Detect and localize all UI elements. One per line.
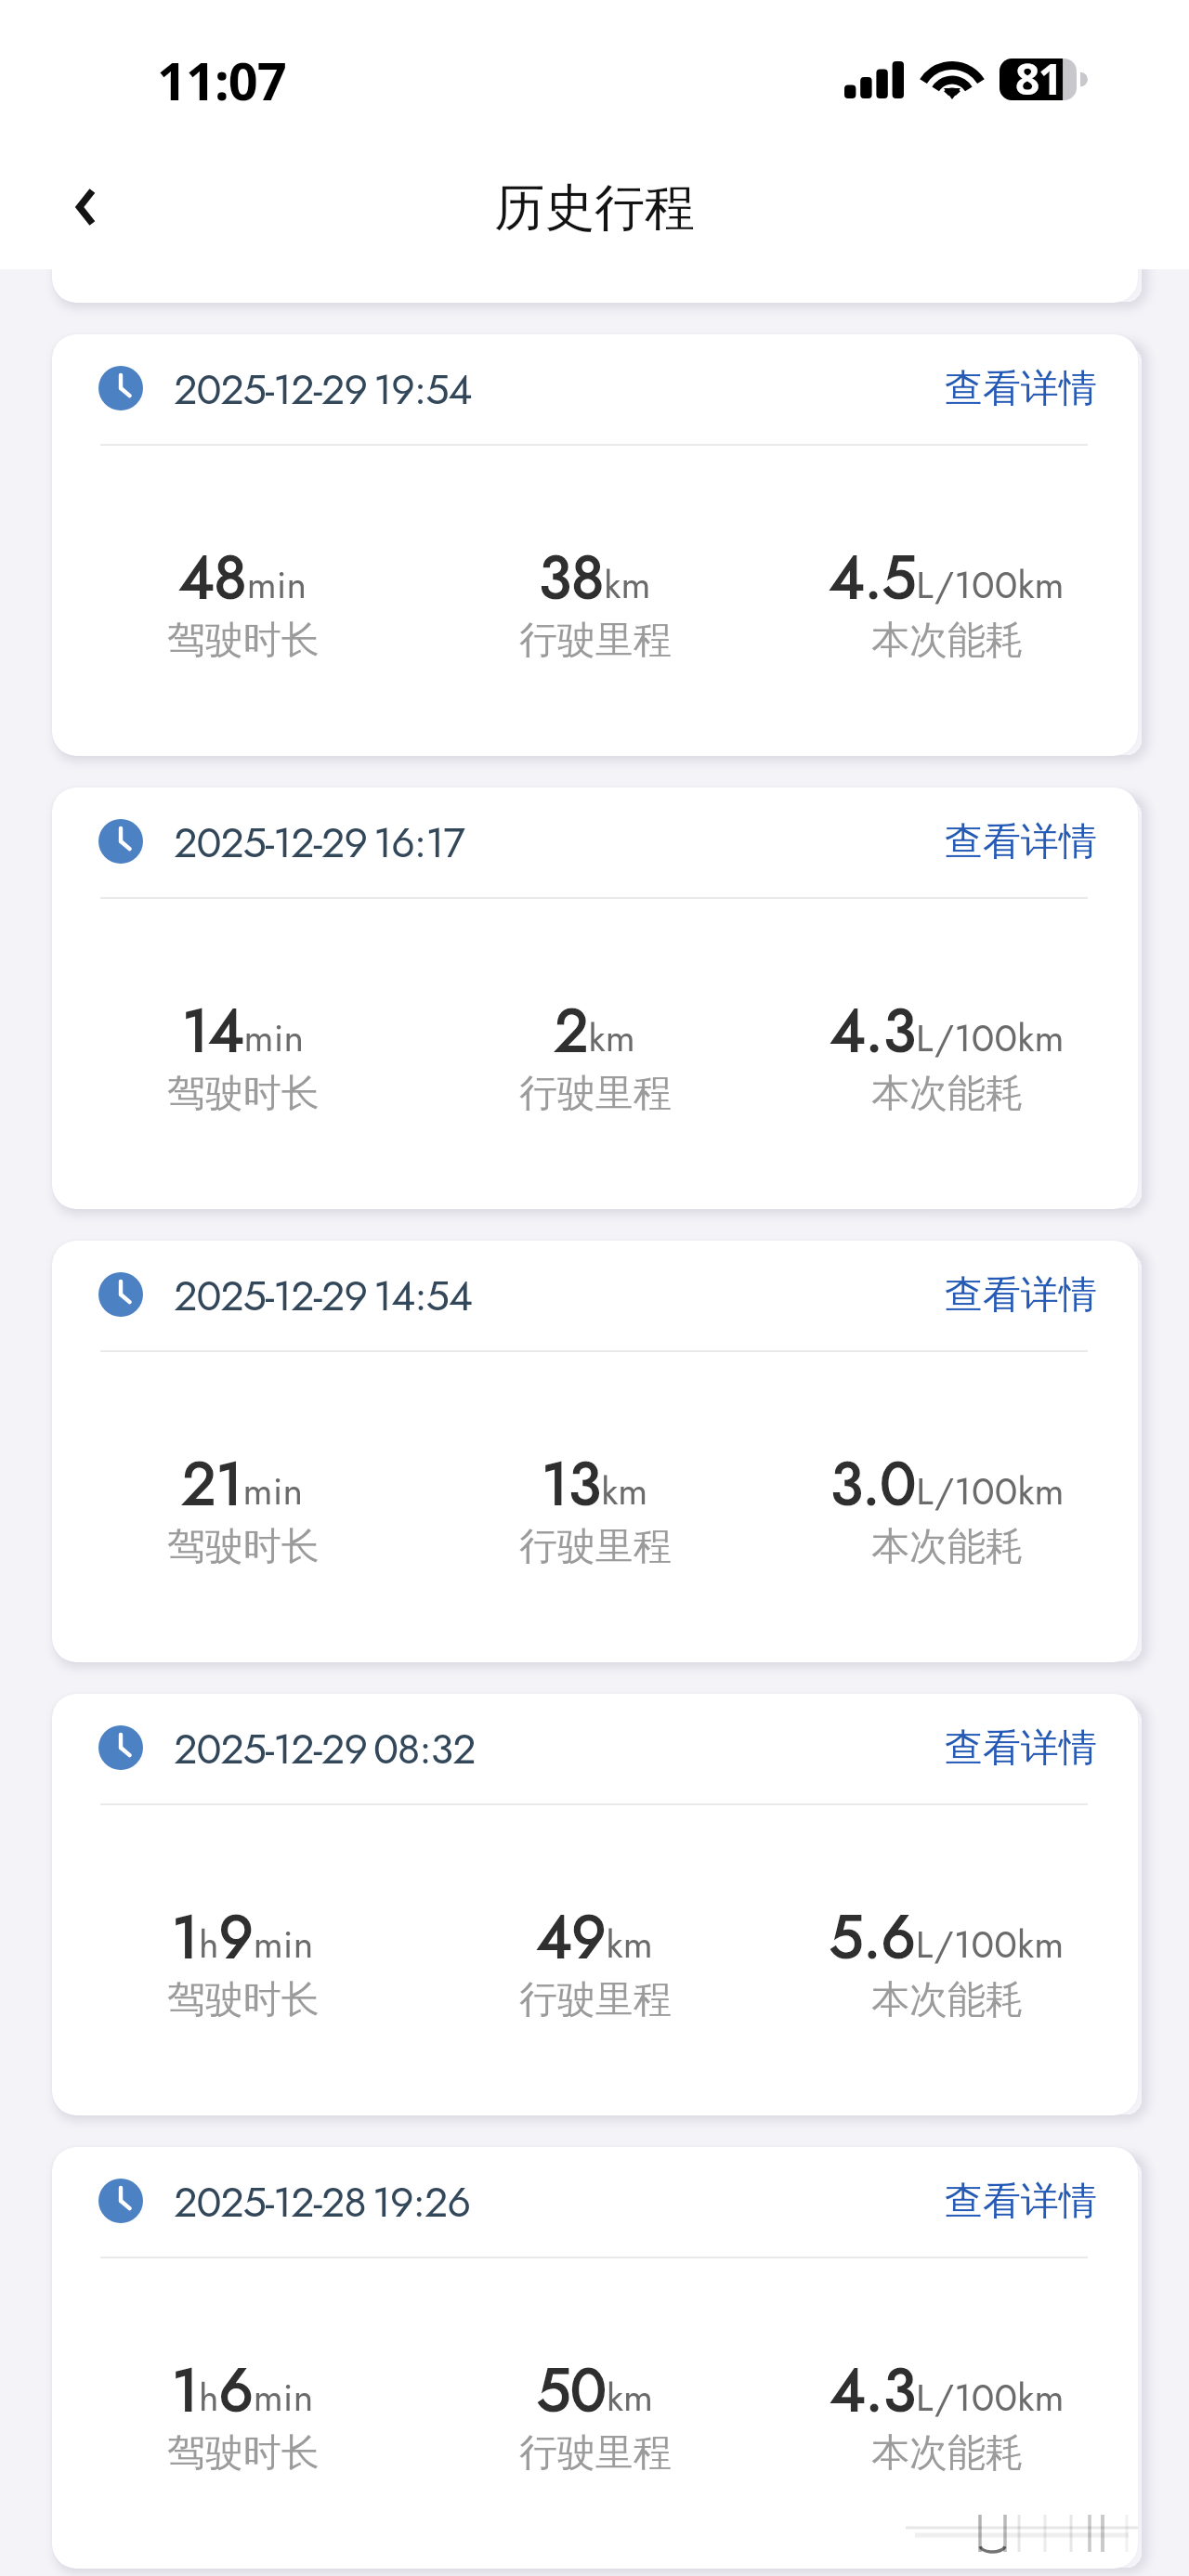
button[interactable]: Back — [50, 172, 121, 242]
staticText: 驾驶时长 — [167, 2429, 320, 2478]
staticText: 驾驶时长 — [167, 1976, 320, 2024]
button[interactable]: 2025-12-29 19:54 — [52, 334, 1138, 756]
staticText: 49km — [537, 1894, 653, 1980]
staticText: 历史行程 — [0, 176, 1189, 240]
staticText: 2025-12-29 08:32 — [174, 1719, 476, 1779]
button[interactable]: 2025-12-28 19:26 — [52, 2147, 1138, 2569]
staticText: 行驶里程 — [519, 617, 672, 665]
staticText: 4.3L/100km — [830, 2348, 1065, 2433]
staticText: 本次能耗 — [871, 2429, 1024, 2478]
staticText: 11:07 — [157, 45, 286, 115]
staticText: 行驶里程 — [519, 1523, 672, 1571]
staticText: 4.5L/100km — [830, 535, 1065, 620]
button[interactable]: 查看详情 — [916, 1264, 1097, 1327]
staticText: 1h6min — [172, 2348, 314, 2433]
staticText: 14min — [182, 988, 305, 1073]
staticText: 查看详情 — [945, 1724, 1097, 1773]
staticText: 81 — [1015, 49, 1062, 108]
staticText: 行驶里程 — [519, 1976, 672, 2024]
staticText: 38km — [539, 535, 651, 620]
staticText: 查看详情 — [945, 365, 1097, 413]
button[interactable]: 查看详情 — [916, 2170, 1097, 2233]
staticText: 50km — [537, 2348, 654, 2433]
staticText: 驾驶时长 — [167, 1070, 320, 1118]
staticText: 查看详情 — [945, 818, 1097, 866]
staticText: 2025-12-29 19:54 — [174, 359, 472, 420]
button[interactable]: 2025-12-29 08:32 — [52, 1694, 1138, 2115]
staticText: 5.6L/100km — [830, 1894, 1065, 1980]
staticText: 本次能耗 — [871, 1070, 1024, 1118]
staticText: 3.0L/100km — [830, 1441, 1065, 1527]
staticText: 驾驶时长 — [167, 1523, 320, 1571]
staticText: 查看详情 — [945, 2178, 1097, 2226]
staticText: 1h9min — [172, 1894, 314, 1980]
button[interactable]: 2025-12-29 16:17 — [52, 787, 1138, 1209]
button[interactable]: 2025-12-29 14:54 — [52, 1241, 1138, 1662]
staticText: 2km — [555, 988, 635, 1073]
staticText: 本次能耗 — [871, 1523, 1024, 1571]
button[interactable]: 查看详情 — [916, 358, 1097, 421]
button[interactable]: 查看详情 — [916, 811, 1097, 874]
button[interactable]: 查看详情 — [916, 1717, 1097, 1780]
staticText: 本次能耗 — [871, 1976, 1024, 2024]
staticText: 行驶里程 — [519, 1070, 672, 1118]
staticText: 2025-12-28 19:26 — [174, 2172, 470, 2232]
staticText: 48min — [179, 535, 307, 620]
staticText: 4.3L/100km — [830, 988, 1065, 1073]
staticText: 本次能耗 — [871, 617, 1024, 665]
staticText: 2025-12-29 14:54 — [174, 1266, 472, 1326]
staticText: 行驶里程 — [519, 2429, 672, 2478]
staticText: 2025-12-29 16:17 — [174, 813, 464, 873]
staticText: 21min — [182, 1441, 304, 1527]
staticText: 13km — [542, 1441, 648, 1527]
staticText: 查看详情 — [945, 1271, 1097, 1320]
staticText: 驾驶时长 — [167, 617, 320, 665]
